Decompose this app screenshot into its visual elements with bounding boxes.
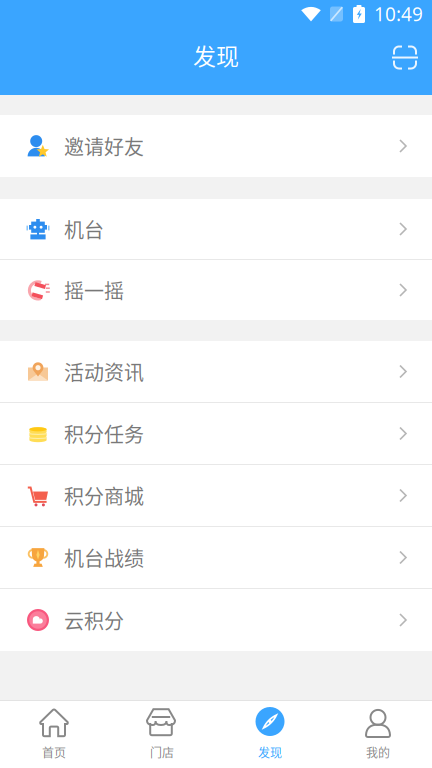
staticText: 我的 xyxy=(366,744,390,761)
staticText: 邀请好友 xyxy=(64,131,144,160)
button[interactable]: 邀请好友 xyxy=(0,115,432,177)
button[interactable]: 活动资讯 xyxy=(0,341,432,402)
staticText: 积分商城 xyxy=(64,481,144,510)
button[interactable]: 门店 xyxy=(108,700,216,768)
button[interactable]: 首页 xyxy=(0,700,108,768)
staticText: 发现 xyxy=(258,744,282,761)
button[interactable]: 积分任务 xyxy=(0,403,432,464)
button[interactable]: 摇一摇 xyxy=(0,260,432,320)
staticText: 10:49 xyxy=(374,1,423,27)
staticText: 活动资讯 xyxy=(64,357,144,386)
staticText: 云积分 xyxy=(64,605,124,634)
staticText: 机台战绩 xyxy=(64,543,144,572)
button[interactable]: Scan QR code xyxy=(378,30,432,84)
button[interactable]: 发现 xyxy=(216,700,324,768)
staticText: 首页 xyxy=(42,744,66,761)
staticText: 摇一摇 xyxy=(64,275,124,304)
staticText: 门店 xyxy=(150,744,174,761)
staticText: 机台 xyxy=(64,214,104,243)
button[interactable]: 积分商城 xyxy=(0,465,432,526)
button[interactable]: 我的 xyxy=(324,700,432,768)
button[interactable]: 机台战绩 xyxy=(0,527,432,588)
button[interactable]: 云积分 xyxy=(0,589,432,651)
staticText: 发现 xyxy=(193,38,239,72)
button[interactable]: 机台 xyxy=(0,199,432,259)
staticText: 积分任务 xyxy=(64,419,144,448)
